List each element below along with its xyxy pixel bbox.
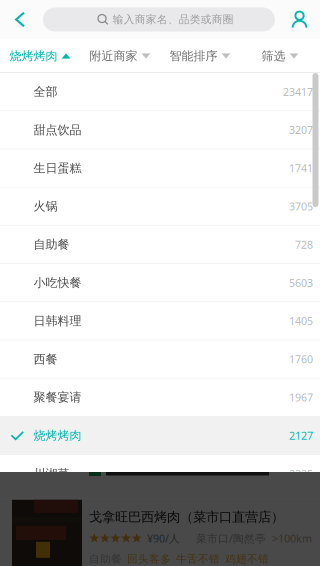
staticText: 小吃快餐 [33,275,81,290]
staticText: 1741 [289,161,313,175]
staticText: 5603 [289,276,313,290]
staticText: 2127 [289,428,313,443]
button[interactable]: 烧烤烤肉 [0,417,320,454]
staticText: 戈拿旺巴西烤肉（菜市口直营店） [89,509,284,525]
staticText: 烧烤烤肉 [10,49,58,63]
button[interactable]: 聚餐宴请 [0,379,320,416]
button[interactable]: 日韩料理 [0,302,320,340]
staticText: 川湘菜 [33,466,69,481]
button[interactable]: 附近商家 [80,39,160,73]
staticText: 输入商家名、品类或商圈 [113,13,234,26]
button[interactable]: Profile [279,0,320,39]
staticText: 鸡翅不错 [225,552,269,565]
staticText: 2325 [289,467,313,481]
button[interactable]: 筛选 [240,39,320,73]
staticText: 牛舌不错 [176,552,220,565]
staticText: 西餐 [33,352,57,366]
button[interactable]: 西餐 [0,340,320,378]
button[interactable]: 全部 [0,73,320,110]
staticText: >100km [272,531,312,545]
staticText: 生日蛋糕 [33,161,81,175]
button[interactable]: 小吃快餐 [0,264,320,301]
button[interactable]: 川湘菜 [0,455,320,492]
button[interactable]: Back [3,0,37,39]
staticText: 自助餐 [33,237,69,252]
staticText: 自助餐 [89,552,122,565]
staticText: 3705 [289,199,313,213]
staticText: 火锅 [33,199,57,214]
staticText: 1967 [289,390,313,404]
button[interactable]: 火锅 [0,188,320,225]
staticText: 3207 [289,123,313,137]
staticText: 附近商家 [90,49,138,63]
staticText: 全部 [33,84,57,99]
button[interactable]: 自助餐 [0,226,320,263]
staticText: 烧烤烤肉 [33,428,81,443]
button[interactable]: 甜点饮品 [0,111,320,149]
staticText: 菜市口/陶然亭 [196,531,266,545]
button[interactable]: 烧烤烤肉 [0,39,80,73]
staticText: 聚餐宴请 [33,390,81,405]
staticText: 728 [295,237,313,252]
staticText: 日韩料理 [33,314,81,328]
button[interactable]: 智能排序 [160,39,240,73]
staticText: 甜点饮品 [33,123,81,137]
button[interactable]: 输入商家名、品类或商圈 [43,7,275,31]
staticText: 1760 [289,352,313,366]
staticText: 1405 [289,314,313,328]
staticText: 智能排序 [170,49,218,63]
staticText: 23417 [283,85,313,99]
button[interactable]: 生日蛋糕 [0,149,320,187]
staticText: 筛选 [262,49,286,63]
staticText: ¥90/人 [147,531,180,545]
staticText: 回头客多 [127,552,171,565]
